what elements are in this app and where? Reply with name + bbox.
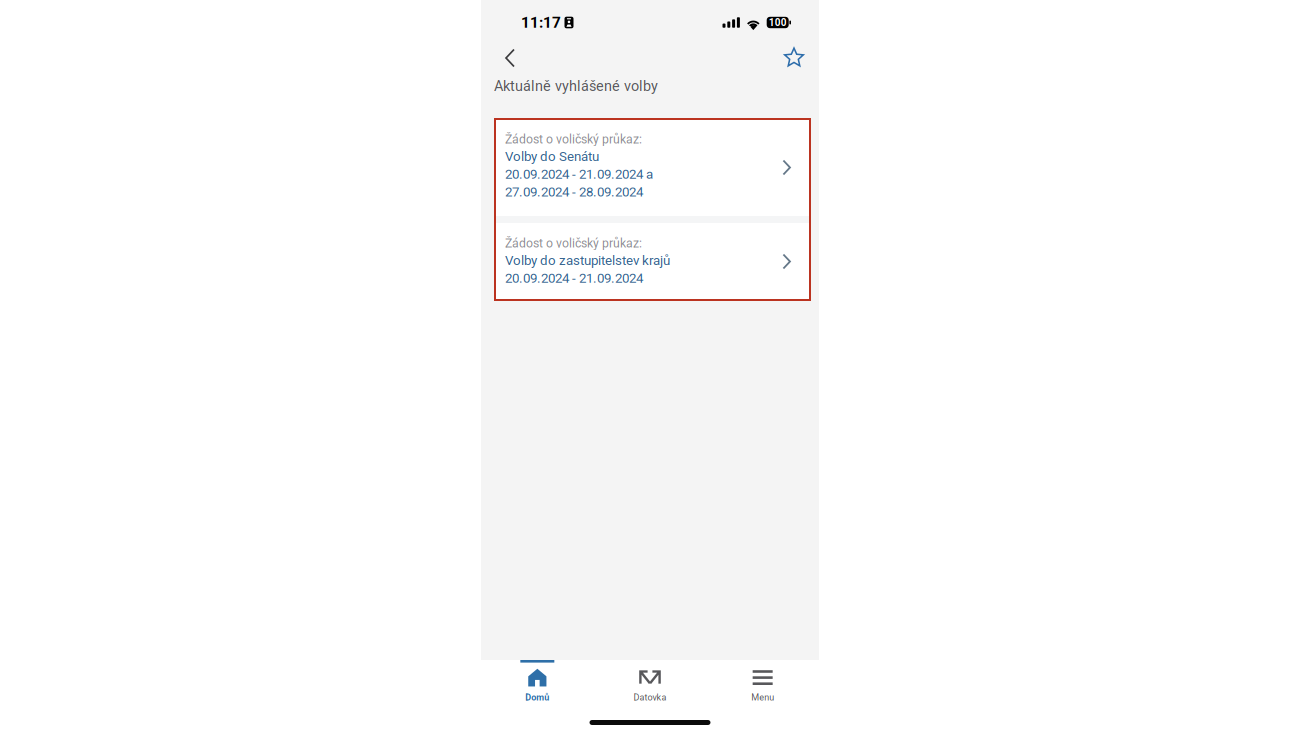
staticText: Volby do zastupitelstev krajů	[505, 253, 670, 268]
staticText: 27.09.2024 - 28.09.2024	[505, 184, 643, 200]
staticText: 20.09.2024 - 21.09.2024	[505, 270, 643, 286]
staticText: 100	[769, 17, 787, 28]
button[interactable]: Favourite	[778, 45, 804, 71]
staticText: Datovka	[633, 692, 666, 703]
button[interactable]: Domů	[481, 660, 594, 708]
staticText: Menu	[751, 692, 774, 703]
button[interactable]: Žádost o voličský průkaz:	[495, 119, 810, 216]
staticText: 11:17	[521, 13, 561, 31]
button[interactable]: Back	[505, 45, 533, 71]
button[interactable]: Žádost o voličský průkaz:	[495, 223, 810, 300]
button[interactable]: Datovka	[594, 660, 706, 708]
staticText: Žádost o voličský průkaz:	[505, 236, 642, 250]
button[interactable]: Menu	[706, 660, 819, 708]
staticText: Žádost o voličský průkaz:	[505, 132, 642, 146]
staticText: 20.09.2024 - 21.09.2024 a	[505, 166, 653, 182]
staticText: Aktuálně vyhlášené volby	[494, 78, 658, 94]
staticText: Domů	[525, 692, 549, 703]
staticText: Volby do Senátu	[505, 149, 599, 164]
